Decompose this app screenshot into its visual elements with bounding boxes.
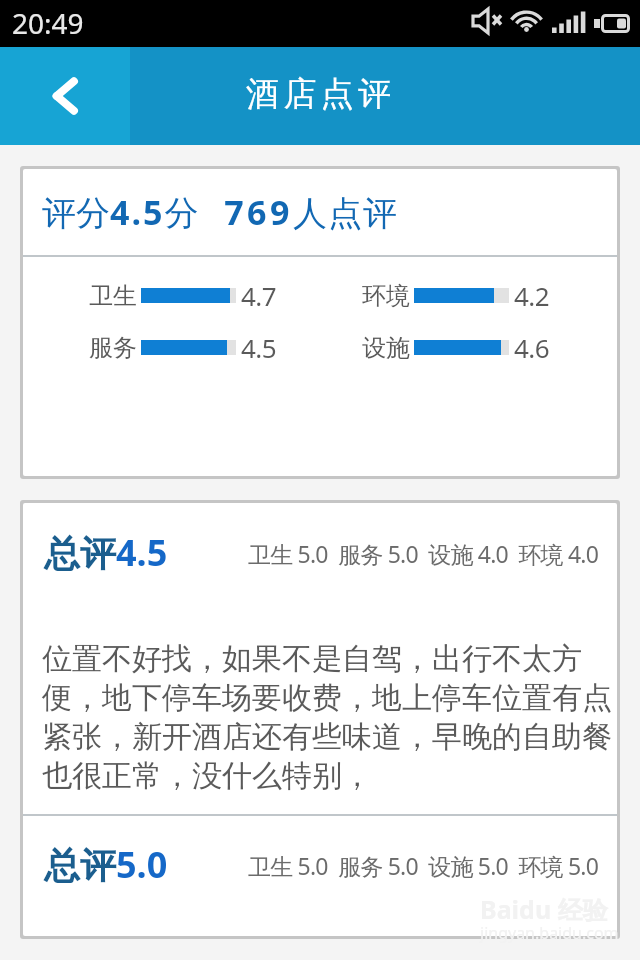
staticText: 20:49 bbox=[12, 4, 84, 42]
staticText: 4.2 bbox=[514, 278, 549, 313]
staticText: 酒店点评 bbox=[246, 73, 396, 115]
staticText: 卫生 5.0 服务 5.0 设施 4.0 环境 4.0 bbox=[248, 538, 599, 569]
staticText: 4.5 bbox=[241, 330, 276, 365]
button[interactable]: Back bbox=[0, 47, 130, 145]
staticText: 卫生 bbox=[89, 281, 137, 311]
button[interactable]: 总评4.5 bbox=[23, 503, 617, 814]
staticText: Baidu 经验 bbox=[480, 892, 608, 926]
staticText: jingyan.baidu.com bbox=[480, 922, 619, 944]
button[interactable]: 总评5.0 bbox=[23, 816, 617, 942]
staticText: 卫生 5.0 服务 5.0 设施 5.0 环境 5.0 bbox=[248, 850, 599, 881]
staticText: 位置不好找，如果不是自驾，出行不太方便，地下停车场要收费，地上停车位置有点紧张，… bbox=[42, 640, 614, 795]
staticText: 4.6 bbox=[514, 330, 549, 365]
staticText: 设施 bbox=[362, 333, 410, 363]
staticText: 总评5.0 bbox=[44, 840, 168, 889]
staticText: 评分4.5分 769人点评 bbox=[42, 189, 398, 235]
button[interactable]: 评分4.5分 769人点评 bbox=[23, 169, 617, 476]
staticText: 总评4.5 bbox=[44, 528, 168, 577]
staticText: 4.7 bbox=[241, 278, 276, 313]
staticText: 环境 bbox=[362, 281, 410, 311]
staticText: 服务 bbox=[89, 333, 137, 363]
